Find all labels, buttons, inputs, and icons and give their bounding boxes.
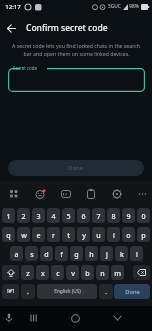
button[interactable]: s [25, 246, 38, 261]
button[interactable]: o [122, 227, 135, 242]
staticText: q [6, 230, 11, 240]
button[interactable]: z [21, 265, 34, 280]
button[interactable]: . [99, 284, 113, 299]
button[interactable]: m [111, 265, 124, 280]
button[interactable]: 0 [137, 208, 150, 223]
button[interactable]: x [36, 265, 49, 280]
button[interactable]: 6 [77, 208, 90, 223]
button[interactable] [133, 265, 150, 280]
button[interactable]: f [55, 246, 68, 261]
button[interactable]: i [107, 227, 120, 242]
staticText: 5 [66, 211, 71, 221]
button[interactable]: 9 [122, 208, 135, 223]
staticText: w [21, 230, 27, 240]
button[interactable]: h [85, 246, 98, 261]
staticText: 3 [36, 211, 41, 221]
staticText: g [74, 249, 79, 259]
staticText: 9 [126, 211, 131, 221]
staticText: p [141, 230, 146, 240]
staticText: n [100, 268, 105, 278]
staticText: j [106, 249, 108, 259]
staticText: 12:17 [5, 3, 21, 11]
staticText: 4 [51, 211, 56, 221]
staticText: 98% [129, 3, 139, 10]
staticText: a [14, 249, 19, 259]
button[interactable]: t [62, 227, 75, 242]
button[interactable]: g [70, 246, 83, 261]
button[interactable]: d [40, 246, 53, 261]
staticText: r [52, 230, 55, 240]
staticText: 5GUC [108, 3, 121, 10]
button[interactable]: w [17, 227, 30, 242]
staticText: Done [68, 164, 84, 172]
staticText: m [114, 268, 121, 278]
staticText: b [85, 268, 90, 278]
staticText: c [56, 268, 60, 278]
button[interactable]: , [21, 284, 35, 299]
staticText: x [41, 268, 45, 278]
staticText: Done [125, 288, 140, 296]
staticText: u [96, 230, 101, 240]
button[interactable]: !#1 [2, 284, 19, 299]
staticText: e [36, 230, 41, 240]
button[interactable]: c [51, 265, 64, 280]
staticText: 6 [81, 211, 86, 221]
button[interactable]: u [92, 227, 105, 242]
button[interactable]: English (US) [37, 284, 97, 299]
staticText: Secret code [13, 65, 37, 71]
staticText: s [30, 249, 34, 259]
staticText: English (US) [54, 288, 81, 295]
staticText: o [126, 230, 131, 240]
button[interactable]: q [2, 227, 15, 242]
staticText: A secret code lets you find locked chats… [12, 42, 140, 49]
staticText: 2 [21, 211, 26, 221]
staticText: z [26, 268, 30, 278]
staticText: k [120, 249, 124, 259]
staticText: 1 [6, 211, 11, 221]
button[interactable]: 8 [107, 208, 120, 223]
button[interactable] [2, 265, 19, 280]
staticText: t [67, 230, 70, 240]
button[interactable]: 4 [47, 208, 60, 223]
staticText: i [113, 230, 115, 240]
staticText: l [136, 249, 138, 259]
button[interactable]: Done [8, 160, 144, 176]
staticText: f [60, 249, 63, 259]
button[interactable]: 5 [62, 208, 75, 223]
button[interactable]: 3 [32, 208, 45, 223]
button[interactable]: 2 [17, 208, 30, 223]
button[interactable]: p [137, 227, 150, 242]
staticText: h [89, 249, 94, 259]
staticText: 7 [96, 211, 101, 221]
staticText: . [105, 288, 107, 296]
button[interactable]: k [115, 246, 128, 261]
button[interactable]: j [100, 246, 113, 261]
staticText: v [71, 268, 75, 278]
button[interactable] [2, 20, 20, 36]
button[interactable]: v [66, 265, 79, 280]
button[interactable]: a [10, 246, 23, 261]
button[interactable]: r [47, 227, 60, 242]
staticText: d [44, 249, 49, 259]
button[interactable]: 1 [2, 208, 15, 223]
staticText: bar and open them on some linked devices… [23, 50, 130, 57]
button[interactable]: n [96, 265, 109, 280]
staticText: 8 [111, 211, 116, 221]
button[interactable]: l [130, 246, 143, 261]
staticText: , [27, 288, 29, 296]
button[interactable]: y [77, 227, 90, 242]
button[interactable]: Done [114, 284, 150, 299]
button[interactable]: 7 [92, 208, 105, 223]
staticText: !#1 [7, 288, 15, 295]
staticText: 0 [141, 211, 146, 221]
staticText: Confirm secret code [26, 22, 108, 34]
button[interactable]: e [32, 227, 45, 242]
button[interactable]: b [81, 265, 94, 280]
staticText: y [82, 230, 86, 240]
